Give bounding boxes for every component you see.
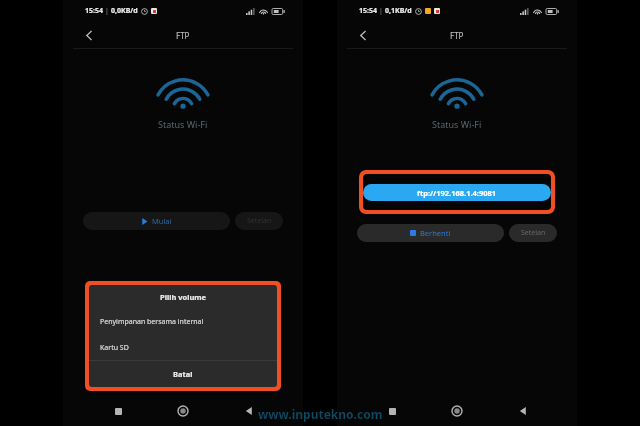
staticText: 15:54 — [359, 6, 377, 16]
staticText: Penyimpanan bersama internal — [100, 317, 204, 327]
staticText: Kartu SD — [100, 343, 129, 353]
staticText: Status Wi-Fi — [432, 118, 482, 130]
staticText: ftp://192.168.1.4:9081 — [417, 188, 497, 198]
button[interactable]: ftp://192.168.1.4:9081 — [363, 184, 551, 201]
button[interactable]: Recent apps — [107, 400, 129, 422]
button[interactable]: Home — [446, 400, 468, 422]
button[interactable]: Berhenti — [357, 224, 504, 242]
staticText: FTP — [450, 30, 464, 41]
button[interactable]: Setelan — [235, 212, 283, 230]
button[interactable]: Penyimpanan bersama internal — [89, 309, 277, 335]
staticText: Mulai — [152, 216, 172, 226]
button[interactable]: Home — [172, 400, 194, 422]
staticText: www.inputekno.com — [258, 406, 383, 422]
staticText: FTP — [176, 30, 190, 41]
staticText: Batal — [173, 369, 193, 379]
staticText: Setelan — [247, 216, 272, 226]
staticText: | — [105, 6, 109, 16]
staticText: 0,1KB/d — [385, 6, 412, 16]
staticText: Pilih volume — [160, 292, 207, 302]
button[interactable]: Back — [512, 400, 534, 422]
staticText: Setelan — [521, 228, 546, 238]
button[interactable]: Batal — [89, 361, 277, 387]
button[interactable]: Mulai — [83, 212, 230, 230]
staticText: | — [379, 6, 383, 16]
button[interactable]: Back — [351, 23, 375, 47]
button[interactable]: Back — [238, 400, 260, 422]
staticText: 15:54 — [85, 6, 103, 16]
button[interactable]: Recent apps — [381, 400, 403, 422]
button[interactable]: Back — [77, 23, 101, 47]
staticText: Berhenti — [420, 228, 451, 238]
button[interactable]: Setelan — [509, 224, 557, 242]
button[interactable]: Kartu SD — [89, 335, 277, 360]
staticText: Status Wi-Fi — [158, 118, 208, 130]
staticText: 0,0KB/d — [111, 6, 138, 16]
